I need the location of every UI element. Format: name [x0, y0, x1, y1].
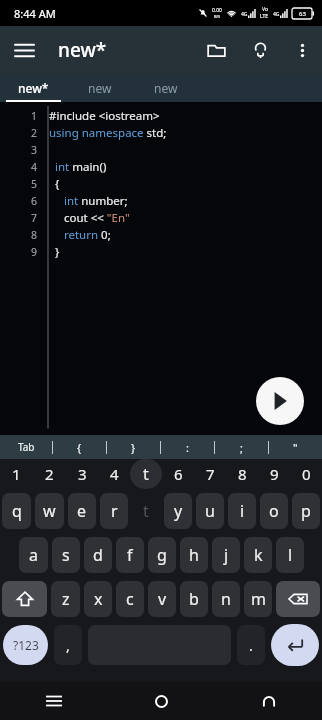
staticText: { — [77, 440, 82, 455]
button[interactable]: q — [2, 493, 31, 529]
staticText: w — [43, 500, 56, 522]
button[interactable]: Backspace — [276, 581, 320, 617]
staticText: . — [249, 636, 253, 655]
staticText: 7 — [31, 211, 38, 225]
staticText: j — [224, 544, 229, 566]
button[interactable]: } — [107, 435, 160, 459]
button[interactable]: w — [35, 493, 64, 529]
staticText: q — [12, 500, 22, 522]
button[interactable]: " — [269, 435, 322, 459]
staticText: e — [77, 500, 87, 522]
button[interactable]: t — [132, 493, 160, 529]
button[interactable]: 4 — [98, 459, 130, 489]
button[interactable]: Menu — [0, 26, 48, 74]
button[interactable]: c — [116, 581, 144, 617]
button[interactable]: 0 — [290, 459, 322, 489]
button[interactable]: d — [84, 537, 112, 573]
button[interactable]: 8 — [226, 459, 258, 489]
button[interactable]: n — [212, 581, 240, 617]
staticText: new — [154, 80, 178, 96]
button[interactable]: ?123 — [3, 625, 48, 665]
button[interactable]: o — [260, 493, 288, 529]
button[interactable]: f — [116, 537, 144, 573]
staticText: 8 — [238, 464, 247, 484]
button[interactable]: new — [133, 74, 199, 102]
staticText: t — [143, 463, 149, 485]
staticText: k — [254, 544, 263, 566]
button[interactable]: ; — [215, 435, 268, 459]
staticText: 8:44 AM — [14, 6, 56, 21]
button[interactable]: u — [196, 493, 224, 529]
staticText: g — [157, 544, 167, 566]
button[interactable]: 6 — [162, 459, 194, 489]
staticText: s — [62, 544, 70, 566]
staticText: Vo — [262, 6, 268, 13]
button[interactable]: More options — [282, 30, 322, 70]
staticText: new — [88, 80, 112, 96]
staticText: 4G — [241, 11, 248, 18]
staticText: l — [288, 544, 293, 566]
button[interactable]: . — [237, 625, 265, 665]
button[interactable]: Hints — [238, 28, 282, 72]
staticText: i — [240, 500, 245, 522]
button[interactable]: 1 — [0, 459, 33, 489]
staticText: 2 — [45, 464, 54, 484]
button[interactable]: z — [51, 581, 80, 617]
button[interactable]: Shift — [2, 581, 47, 617]
button[interactable]: x — [84, 581, 112, 617]
staticText: 0.00 — [212, 7, 222, 14]
staticText: f — [127, 544, 133, 566]
staticText: " — [293, 440, 298, 455]
button[interactable]: a — [19, 537, 48, 573]
staticText: 4 — [110, 464, 119, 484]
button[interactable]: Recents — [0, 682, 108, 720]
staticText: using namespace std; — [49, 125, 167, 141]
staticText: #include <iostream> — [49, 108, 160, 124]
button[interactable]: Run — [256, 377, 304, 425]
button[interactable]: Home — [108, 682, 215, 720]
staticText: { — [49, 176, 60, 192]
button[interactable]: 9 — [258, 459, 290, 489]
button[interactable]: , — [54, 625, 82, 665]
staticText: 1 — [31, 109, 38, 123]
button[interactable]: v — [148, 581, 176, 617]
button[interactable]: Tab — [0, 435, 52, 459]
staticText: Tab — [18, 440, 35, 454]
button[interactable]: e — [68, 493, 96, 529]
staticText: z — [62, 588, 70, 610]
button[interactable]: t — [130, 459, 162, 489]
staticText: : — [186, 440, 189, 455]
button[interactable]: 7 — [194, 459, 226, 489]
button[interactable]: p — [292, 493, 320, 529]
staticText: 3 — [78, 464, 87, 484]
staticText: h — [189, 544, 199, 566]
button[interactable]: Back — [215, 682, 322, 720]
button[interactable]: k — [244, 537, 272, 573]
button[interactable]: h — [180, 537, 208, 573]
button[interactable]: new* — [0, 74, 67, 102]
button[interactable]: b — [180, 581, 208, 617]
button[interactable]: s — [52, 537, 80, 573]
staticText: r — [111, 500, 118, 522]
staticText: 7 — [206, 464, 215, 484]
button[interactable]: g — [148, 537, 176, 573]
staticText: 1 — [12, 464, 21, 484]
button[interactable]: Enter — [271, 624, 319, 666]
button[interactable]: i — [228, 493, 256, 529]
button[interactable]: r — [100, 493, 128, 529]
button[interactable]: j — [212, 537, 240, 573]
staticText: 5 — [31, 177, 38, 191]
button[interactable]: 2 — [33, 459, 66, 489]
staticText: 4G — [273, 11, 280, 18]
button[interactable]: Open folder — [194, 28, 238, 72]
button[interactable]: l — [276, 537, 304, 573]
staticText: p — [301, 500, 311, 522]
button[interactable]: 3 — [66, 459, 98, 489]
button[interactable]: m — [244, 581, 272, 617]
button[interactable]: { — [53, 435, 106, 459]
button[interactable]: y — [164, 493, 192, 529]
staticText: n — [221, 588, 231, 610]
button[interactable]: new — [67, 74, 133, 102]
button[interactable]: : — [161, 435, 214, 459]
